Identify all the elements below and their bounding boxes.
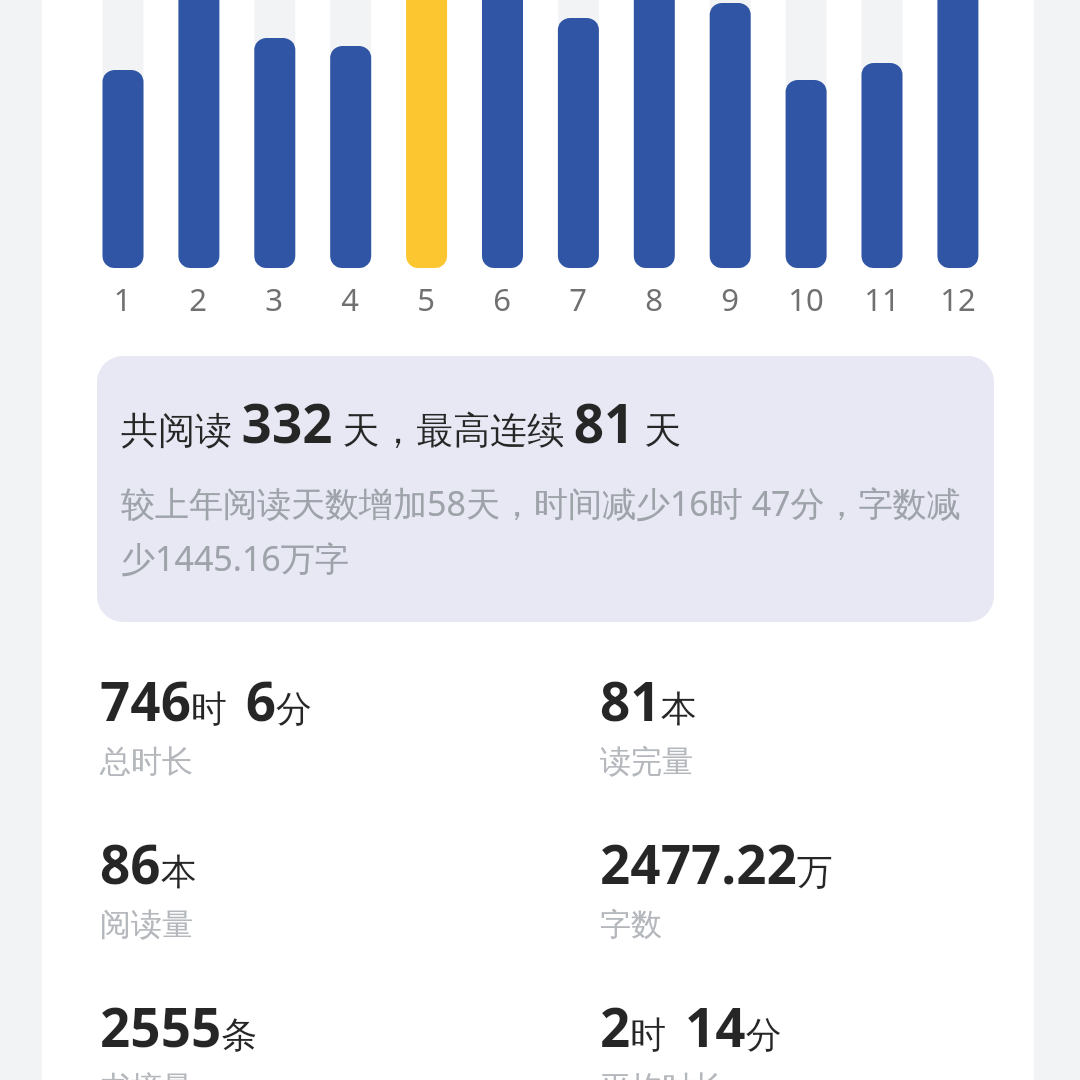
staticText: 7 <box>540 278 616 320</box>
staticText: 2555条 <box>100 990 258 1062</box>
staticText: 746时 6分 <box>100 664 312 736</box>
staticText: 8 <box>616 278 692 320</box>
staticText: 3 <box>236 278 312 320</box>
staticText: 11 <box>844 278 920 320</box>
staticText: 81本 <box>600 664 697 736</box>
staticText: 6 <box>464 278 540 320</box>
button[interactable]: 2时 14分 <box>600 990 1020 1080</box>
staticText: 读完量 <box>600 742 693 781</box>
button[interactable]: 2477.22万 <box>600 827 1020 944</box>
button[interactable]: 共阅读 332 天，最高连续 81 天 <box>97 356 994 622</box>
button[interactable]: 86本 <box>100 827 600 944</box>
staticText: 2时 14分 <box>600 990 782 1062</box>
staticText: 12 <box>920 278 996 320</box>
staticText: 字数 <box>600 905 662 944</box>
staticText: 共阅读 332 天，最高连续 81 天 <box>121 386 682 458</box>
staticText: 4 <box>312 278 388 320</box>
staticText: 总时长 <box>100 742 193 781</box>
staticText: 9 <box>692 278 768 320</box>
staticText: 2477.22万 <box>600 827 833 899</box>
button[interactable]: 746时 6分 <box>100 664 600 781</box>
staticText: 阅读量 <box>100 905 193 944</box>
staticText: 较上年阅读天数增加58天，时间减少16时 47分，字数减少1445.16万字 <box>121 480 980 581</box>
staticText: 10 <box>768 278 844 320</box>
staticText: 86本 <box>100 827 197 899</box>
button[interactable]: 2555条 <box>100 990 600 1080</box>
button[interactable]: 81本 <box>600 664 1020 781</box>
staticText: 5 <box>388 278 464 320</box>
staticText: 2 <box>160 278 236 320</box>
staticText: 平均时长 <box>600 1068 724 1080</box>
staticText: 书摘量 <box>100 1068 193 1080</box>
staticText: 1 <box>85 278 160 320</box>
